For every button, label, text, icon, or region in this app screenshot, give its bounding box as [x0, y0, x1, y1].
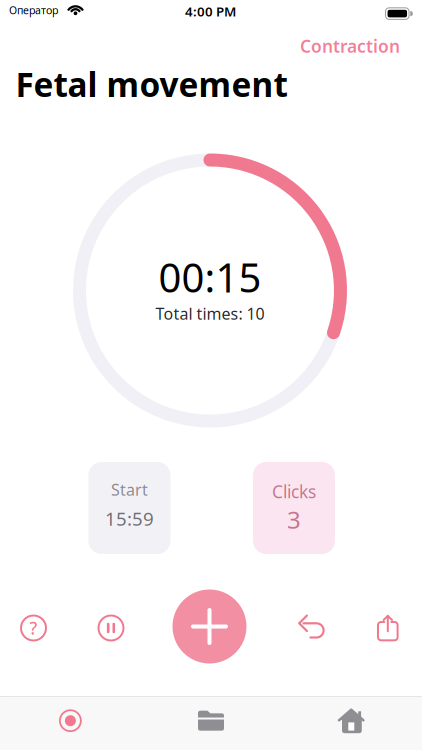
button[interactable]: Record	[0, 697, 141, 745]
button[interactable]: Help	[20, 614, 47, 641]
button[interactable]: Home	[281, 697, 422, 745]
staticText: Contraction	[300, 34, 400, 57]
staticText: 00:15	[158, 250, 261, 303]
staticText: Fetal movement	[15, 62, 287, 106]
button[interactable]: Add movement	[172, 589, 246, 663]
button[interactable]: Pause	[97, 614, 124, 641]
staticText: 4:00 PM	[185, 2, 236, 20]
staticText: Оператор	[9, 3, 58, 17]
staticText: 3	[287, 504, 301, 535]
button[interactable]: History	[141, 697, 281, 745]
button[interactable]: Undo	[296, 614, 324, 642]
button[interactable]: Share	[377, 615, 399, 641]
staticText: Total times: 10	[155, 303, 264, 324]
button[interactable]: Contraction	[300, 34, 400, 57]
staticText: Start	[111, 479, 148, 500]
staticText: Clicks	[272, 480, 316, 503]
staticText: 15:59	[105, 506, 154, 531]
staticText: ?	[29, 616, 37, 639]
